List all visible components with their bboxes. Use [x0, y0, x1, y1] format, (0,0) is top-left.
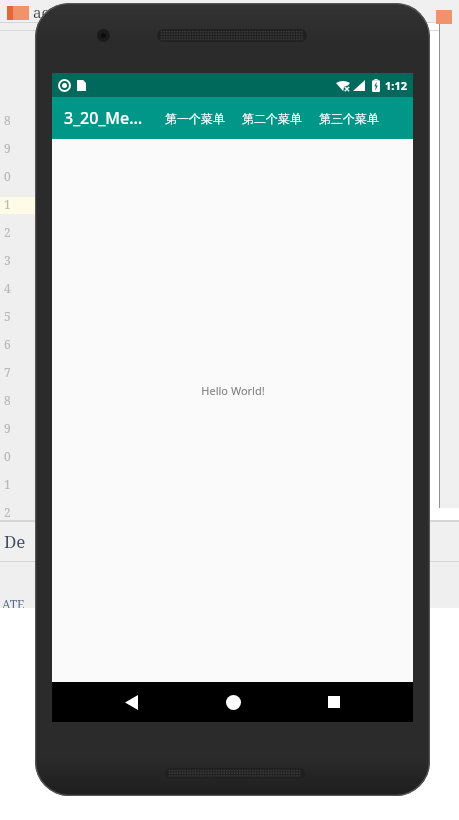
staticText: 9 [4, 140, 11, 156]
staticText: 0 [4, 168, 11, 184]
staticText: 3 [4, 252, 11, 268]
staticText: De [4, 530, 26, 553]
staticText: 第三个菜单 [319, 111, 379, 126]
button[interactable]: Back [109, 682, 153, 722]
staticText: 5 [4, 308, 11, 324]
staticText: 0 [4, 448, 11, 464]
staticText: 8 [4, 392, 11, 408]
staticText: 2 [4, 504, 11, 520]
button[interactable]: Home [211, 682, 255, 722]
staticText: 8 [4, 112, 11, 128]
staticText: 1 [4, 196, 11, 212]
staticText: ATE [2, 596, 25, 612]
staticText: 6 [4, 336, 11, 352]
staticText: 1:12 [385, 78, 407, 93]
button[interactable]: 第三个菜单 [319, 105, 379, 132]
staticText: 2 [4, 224, 11, 240]
staticText: 第二个菜单 [242, 111, 302, 126]
staticText: 4 [4, 280, 11, 296]
button[interactable]: 第二个菜单 [242, 105, 302, 132]
staticText: 9 [4, 420, 11, 436]
staticText: acti [33, 2, 59, 22]
staticText: 3_20_Me… [64, 107, 143, 129]
button[interactable]: 3_20_Me… [64, 107, 143, 129]
staticText: 第一个菜单 [165, 111, 225, 126]
button[interactable]: Recent apps [312, 682, 356, 722]
staticText: Hello World! [201, 383, 265, 398]
staticText: 1 [4, 476, 11, 492]
staticText: 7 [4, 364, 11, 380]
button[interactable]: 第一个菜单 [165, 105, 225, 132]
